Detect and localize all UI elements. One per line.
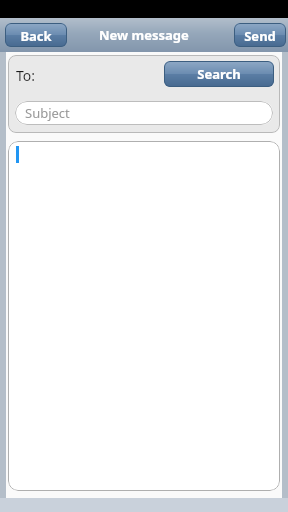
button[interactable]: Back bbox=[5, 23, 67, 47]
staticText: New message bbox=[99, 26, 189, 44]
button[interactable]: Search recipient bbox=[164, 61, 274, 87]
staticText: To: bbox=[16, 66, 36, 85]
button[interactable]: Send bbox=[234, 23, 286, 47]
button[interactable]: Message body bbox=[8, 141, 280, 491]
staticText: Subject bbox=[25, 104, 70, 122]
staticText: Send bbox=[244, 27, 276, 43]
button[interactable]: Subject bbox=[15, 101, 273, 125]
staticText: Back bbox=[20, 27, 52, 43]
staticText: Search recipient bbox=[172, 65, 266, 83]
